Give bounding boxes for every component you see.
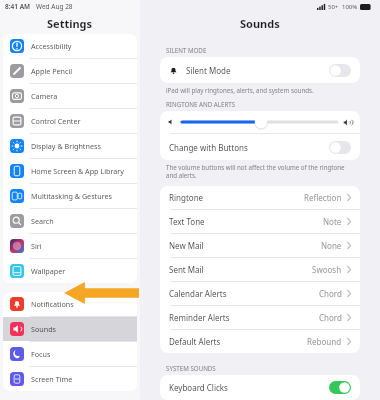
button[interactable]: Screen Time bbox=[3, 367, 137, 391]
button[interactable]: Reminder Alerts bbox=[160, 306, 360, 329]
staticText: Silent Mode bbox=[186, 65, 231, 76]
staticText: Change with Buttons bbox=[169, 142, 248, 153]
button[interactable]: Toggle off bbox=[329, 141, 351, 154]
other: Pointer arrow highlighting Sounds bbox=[64, 282, 139, 304]
staticText: Screen Time bbox=[31, 374, 73, 384]
button[interactable]: Multitasking & Gestures bbox=[3, 184, 137, 208]
staticText: Swoosh bbox=[312, 264, 342, 275]
button[interactable]: Wallpaper bbox=[3, 259, 137, 283]
button[interactable]: Calendar Alerts bbox=[160, 282, 360, 305]
staticText: Multitasking & Gestures bbox=[31, 191, 112, 201]
staticText: New Mail bbox=[169, 240, 204, 251]
staticText: Wallpaper bbox=[31, 266, 66, 276]
staticText: None bbox=[321, 240, 342, 251]
staticText: Calendar Alerts bbox=[169, 288, 227, 299]
button[interactable]: Accessibility bbox=[3, 34, 137, 58]
button[interactable]: Text Tone bbox=[160, 210, 360, 233]
button[interactable]: Notifications bbox=[3, 292, 137, 316]
staticText: Accessibility bbox=[31, 41, 72, 51]
other: Volume low bbox=[168, 118, 176, 126]
staticText: Settings bbox=[47, 16, 93, 31]
button[interactable]: Change with Buttons bbox=[160, 134, 360, 160]
staticText: SYSTEM SOUNDS bbox=[166, 364, 216, 372]
staticText: Notifications bbox=[31, 299, 74, 309]
staticText: Sent Mail bbox=[169, 264, 204, 275]
button[interactable]: Siri bbox=[3, 234, 137, 258]
staticText: Ringtone bbox=[169, 192, 204, 203]
button[interactable]: Apple Pencil bbox=[3, 59, 137, 83]
button[interactable]: Display & Brightness bbox=[3, 134, 137, 158]
staticText: Default Alerts bbox=[169, 336, 221, 347]
button[interactable]: Sent Mail bbox=[160, 258, 360, 281]
staticText: 50+ bbox=[328, 3, 339, 11]
button[interactable]: Toggle off bbox=[329, 64, 351, 77]
staticText: RINGTONE AND ALERTS bbox=[166, 100, 236, 108]
staticText: Focus bbox=[31, 349, 51, 359]
button[interactable]: Toggle on bbox=[329, 381, 351, 394]
button[interactable]: Sounds bbox=[3, 317, 137, 341]
staticText: SILENT MODE bbox=[166, 46, 207, 54]
button[interactable]: Camera bbox=[3, 84, 137, 108]
button[interactable]: Keyboard Clicks bbox=[160, 375, 360, 400]
staticText: Text Tone bbox=[169, 216, 205, 227]
staticText: Apple Pencil bbox=[31, 66, 73, 76]
staticText: Home Screen & App Library bbox=[31, 166, 124, 176]
other: Volume high bbox=[343, 118, 352, 127]
button[interactable]: Home Screen & App Library bbox=[3, 159, 137, 183]
staticText: 100% bbox=[342, 3, 358, 11]
button[interactable]: Control Center bbox=[3, 109, 137, 133]
staticText: 8:41 AM bbox=[5, 2, 31, 11]
staticText: Chord bbox=[319, 312, 342, 323]
staticText: Display & Brightness bbox=[31, 141, 101, 151]
staticText: Keyboard Clicks bbox=[169, 382, 228, 393]
staticText: Sounds bbox=[31, 324, 57, 334]
staticText: Control Center bbox=[31, 116, 81, 126]
button[interactable]: Default Alerts bbox=[160, 330, 360, 353]
staticText: Sounds bbox=[240, 16, 280, 31]
button[interactable]: New Mail bbox=[160, 234, 360, 257]
staticText: Camera bbox=[31, 91, 58, 101]
staticText: Note bbox=[323, 216, 342, 227]
staticText: Wed Aug 28 bbox=[36, 2, 73, 11]
button[interactable]: Silent Mode bbox=[160, 57, 360, 83]
staticText: The volume buttons will not affect the v… bbox=[166, 163, 356, 179]
button[interactable]: Ringtone bbox=[160, 186, 360, 209]
staticText: Chord bbox=[319, 288, 342, 299]
staticText: iPad will play ringtones, alerts, and sy… bbox=[166, 86, 314, 94]
staticText: Reflection bbox=[304, 192, 342, 203]
staticText: Siri bbox=[31, 241, 42, 251]
staticText: Search bbox=[31, 216, 54, 226]
button[interactable]: Search bbox=[3, 209, 137, 233]
staticText: Rebound bbox=[307, 336, 342, 347]
staticText: Reminder Alerts bbox=[169, 312, 230, 323]
button[interactable]: Focus bbox=[3, 342, 137, 366]
